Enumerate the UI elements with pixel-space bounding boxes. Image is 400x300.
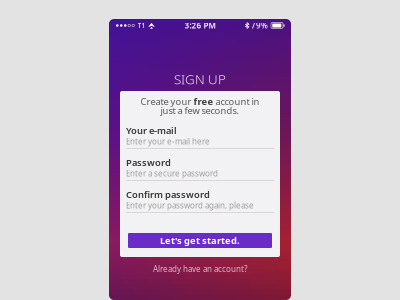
staticText: free [193,95,213,108]
staticText: account in [213,95,259,108]
button[interactable]: Confirm password [126,190,274,222]
button[interactable]: Password [126,158,274,190]
staticText: Enter a secure password [126,168,218,179]
staticText: Enter your e-mail here [126,136,210,147]
button[interactable]: Already have an account? [153,264,247,274]
staticText: Create your [140,95,193,108]
button[interactable]: Your e-mail [126,126,274,158]
staticText: Enter your password again, please [126,200,254,211]
button[interactable]: Let's get started. [128,233,272,248]
staticText: just a few seconds. [160,104,239,117]
staticText: Already have an account? [153,264,247,274]
staticText: Let's get started. [160,234,240,247]
staticText: Password [126,156,171,169]
staticText: T1 [137,21,145,30]
staticText: 79% [251,20,268,31]
staticText: Confirm password [126,188,210,201]
staticText: 3:26 PM [184,20,215,31]
staticText: SIGN UP [174,70,226,88]
staticText: Your e-mail [126,124,177,137]
